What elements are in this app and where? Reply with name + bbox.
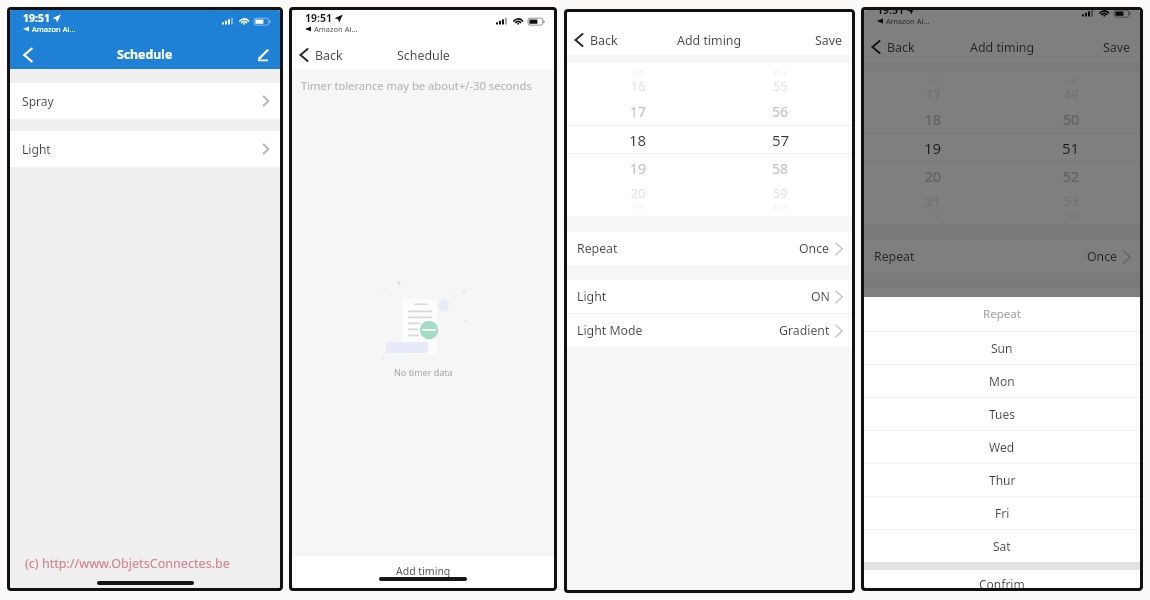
staticText: Light Mode [577,322,643,339]
staticText: Light [577,288,607,305]
staticText: Back [887,39,915,56]
staticText: 51 [1062,138,1080,158]
staticText: Back [590,32,618,49]
staticText: Add timing [396,564,451,578]
button[interactable]: Back [10,40,46,69]
button[interactable]: Spray [10,83,280,119]
button[interactable]: Edit [246,40,280,69]
staticText: Add timing [970,39,1035,56]
staticText: 17 [926,86,941,103]
staticText: Amazon Al... [886,16,930,26]
staticText: 18 [629,130,647,150]
staticText: 60 [774,205,787,209]
button[interactable]: Back [864,32,923,62]
button[interactable]: Fri [864,497,1140,529]
button[interactable]: Light [10,131,280,167]
staticText: ON [1099,296,1118,313]
staticText: 18 [925,110,942,129]
staticText: No timer data [394,366,453,378]
staticText: 17 [630,102,647,121]
staticText: Gradient [779,322,830,339]
staticText: Repeat [577,240,618,257]
button[interactable]: Light [567,280,852,313]
button[interactable]: Wed [864,431,1140,463]
staticText: 16 [631,78,646,95]
staticText: Spray [22,93,54,109]
button[interactable]: Mon [864,365,1140,397]
staticText: 15 [632,67,645,75]
staticText: Back [315,47,343,64]
staticText: Add timing [677,32,742,49]
staticText: Sat [993,538,1011,554]
button[interactable]: Save [806,25,852,55]
button[interactable]: Add timing [292,556,554,588]
staticText: 58 [772,159,789,178]
staticText: 19 [630,159,647,178]
staticText: 21 [632,205,645,209]
button[interactable]: Repeat [567,232,852,265]
staticText: Thur [989,472,1016,488]
button[interactable]: Sun [864,332,1140,364]
staticText: ON [811,288,830,305]
button[interactable]: Thur [864,464,1140,496]
staticText: 49 [1064,86,1079,103]
staticText: 59 [773,185,788,202]
staticText: Fri [995,505,1010,521]
button[interactable]: Back [292,40,351,70]
staticText: 55 [773,78,788,95]
button[interactable]: Repeat [864,240,1140,273]
staticText: 19:51 [23,11,50,25]
staticText: 50 [1063,110,1080,129]
staticText: 54 [774,67,787,75]
button[interactable]: Power [864,288,1140,321]
staticText: Timer tolerance may be about+/-30 second… [301,78,532,93]
staticText: Confrim [979,576,1025,588]
button[interactable]: Sat [864,530,1140,562]
button[interactable]: Save [1094,32,1140,62]
staticText: Mon [989,373,1015,389]
staticText: Repeat [983,306,1021,322]
staticText: Light [22,141,51,157]
staticText: Once [1087,248,1118,265]
staticText: Sun [991,340,1013,356]
staticText: 19:51 [877,10,904,17]
button[interactable]: Back [567,25,626,55]
button[interactable]: Tues [864,398,1140,430]
staticText: 53 [1064,193,1079,210]
staticText: (c) http://www.ObjetsConnectes.be [25,555,230,572]
staticText: Amazon Al... [314,24,358,34]
staticText: 20 [631,185,646,202]
staticText: Schedule [397,47,450,64]
staticText: Wed [989,439,1015,455]
staticText: Amazon Al... [32,24,76,34]
staticText: Schedule [117,46,173,63]
staticText: 19:51 [305,11,332,25]
staticText: Repeat [874,248,915,265]
staticText: Once [799,240,830,257]
staticText: 20 [925,167,942,186]
staticText: Save [1103,39,1131,56]
staticText: Power [874,296,911,313]
staticText: 57 [772,130,790,150]
staticText: Tues [989,406,1016,422]
staticText: 52 [1063,167,1080,186]
button[interactable]: Light Mode [567,314,852,347]
staticText: 56 [772,102,789,121]
button[interactable]: Confrim [864,570,1140,588]
staticText: 19 [924,138,942,158]
staticText: Save [815,32,843,49]
staticText: 21 [926,193,941,210]
